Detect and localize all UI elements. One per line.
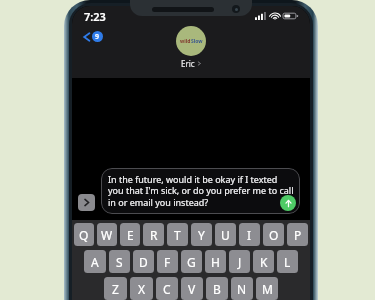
button[interactable]: S [109, 250, 130, 273]
staticText: 7:23 [84, 9, 106, 24]
staticText: Z [112, 281, 119, 297]
button[interactable]: R [143, 223, 164, 246]
staticText: wild [180, 38, 191, 45]
staticText: H [211, 254, 220, 270]
button[interactable]: M [256, 277, 278, 300]
button[interactable]: O [263, 223, 284, 246]
button[interactable]: In the future, would it be okay if I tex… [101, 168, 300, 214]
button[interactable]: Q [74, 223, 94, 246]
staticText: F [164, 254, 171, 270]
button[interactable]: J [229, 250, 250, 273]
staticText: I [247, 227, 252, 243]
button[interactable]: D [133, 250, 154, 273]
staticText: T [174, 227, 181, 243]
staticText: J [238, 254, 242, 270]
button[interactable]: C [156, 277, 178, 300]
button[interactable]: Expand apps [78, 194, 95, 211]
button[interactable]: W [97, 223, 117, 246]
staticText: O [269, 227, 279, 243]
staticText: V [188, 281, 196, 297]
button[interactable]: F [157, 250, 178, 273]
staticText: In the future, would it be okay if I tex… [108, 173, 294, 209]
button[interactable]: T [167, 223, 188, 246]
staticText: 9 [95, 32, 100, 42]
button[interactable]: P [287, 223, 308, 246]
button[interactable]: G [181, 250, 202, 273]
staticText: Q [79, 227, 89, 243]
staticText: U [221, 227, 230, 243]
button[interactable]: Back, 9 unread [78, 28, 107, 45]
button[interactable]: L [277, 250, 298, 273]
button[interactable]: N [231, 277, 253, 300]
button[interactable]: U [215, 223, 236, 246]
staticText: Slow [191, 38, 203, 45]
button[interactable]: V [181, 277, 203, 300]
staticText: Y [198, 227, 205, 243]
button[interactable]: A [84, 250, 106, 273]
staticText: W [101, 227, 113, 243]
button[interactable]: K [253, 250, 274, 273]
staticText: E [127, 227, 134, 243]
button[interactable]: Y [191, 223, 212, 246]
staticText: P [294, 227, 302, 243]
button[interactable]: I [239, 223, 260, 246]
staticText: A [91, 254, 99, 270]
button[interactable]: wild [176, 26, 206, 69]
staticText: R [150, 227, 158, 243]
staticText: D [139, 254, 148, 270]
button[interactable]: H [205, 250, 226, 273]
button[interactable]: X [130, 277, 153, 300]
button[interactable]: B [206, 277, 228, 300]
staticText: B [213, 281, 221, 297]
button[interactable]: Z [104, 277, 127, 300]
staticText: C [163, 281, 171, 297]
staticText: S [116, 254, 123, 270]
staticText: Eric [181, 58, 195, 69]
staticText: N [237, 281, 247, 297]
staticText: M [262, 281, 273, 297]
button[interactable]: Send [280, 195, 296, 211]
staticText: L [284, 254, 291, 270]
button[interactable]: E [120, 223, 140, 246]
staticText: G [187, 254, 196, 270]
staticText: K [260, 254, 268, 270]
staticText: X [138, 281, 146, 297]
